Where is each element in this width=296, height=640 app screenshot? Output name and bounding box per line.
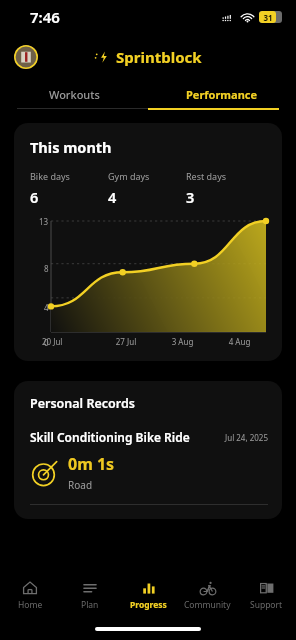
button[interactable]: This month [14,123,282,361]
staticText: Plan [81,599,99,611]
staticText: 0 [44,337,49,347]
staticText: Workouts [49,87,100,102]
button[interactable]: Plan [60,572,119,618]
button[interactable]: Home [0,572,60,618]
staticText: Personal Records [30,395,135,412]
staticText: Sprintblock [116,47,202,67]
staticText: 6 [30,187,39,207]
staticText: Road [68,478,93,492]
button[interactable]: Workouts [0,80,148,108]
staticText: 4 [44,302,49,313]
button[interactable]: Support [237,572,296,618]
staticText: Community [184,599,231,611]
staticText: Rest days [186,170,227,182]
staticText: 13 [39,216,49,227]
staticText: Bike days [30,170,70,182]
staticText: 3 [186,187,195,207]
staticText: 27 Jul [98,336,154,347]
button[interactable]: Personal Records [14,381,282,519]
staticText: Skill Conditioning Bike Ride [30,429,225,445]
staticText: Jul 24, 2025 [225,432,268,443]
staticText: Gym days [108,170,150,182]
button[interactable]: Profile [14,45,38,69]
staticText: 8 [44,263,49,274]
staticText: 20 Jul [42,336,98,347]
staticText: This month [30,137,112,157]
staticText: 3 Aug [154,336,211,347]
button[interactable]: Performance [148,80,296,108]
staticText: 4 [108,187,117,207]
button[interactable]: Progress [119,572,178,618]
staticText: Progress [130,599,167,611]
staticText: Support [250,599,283,611]
staticText: 7:46 [30,7,60,27]
staticText: 0m 1s [68,453,115,475]
staticText: 31 [259,12,277,23]
staticText: Home [18,599,43,611]
staticText: 4 Aug [211,336,268,347]
button[interactable]: Community [178,572,237,618]
staticText: Performance [186,87,258,102]
